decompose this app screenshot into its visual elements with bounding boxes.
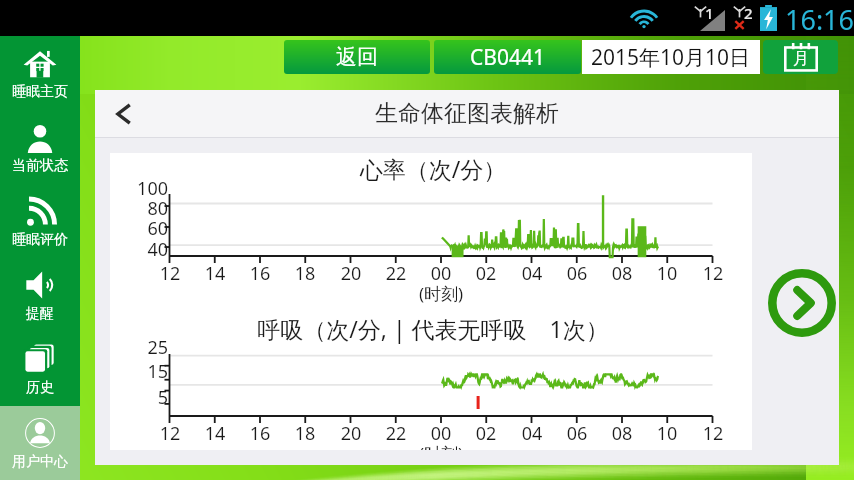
staticText: 睡眠主页	[12, 83, 68, 101]
button[interactable]: 当前状态	[0, 110, 80, 184]
staticText: 2	[744, 3, 753, 23]
staticText: 睡眠评价	[12, 231, 68, 249]
button[interactable]: 睡眠评价	[0, 184, 80, 258]
staticText: 14	[197, 421, 233, 446]
staticText: 5	[122, 385, 168, 410]
staticText: 2015年10月10日	[591, 43, 751, 72]
button[interactable]: Calendar	[763, 40, 838, 74]
staticText: 08	[604, 261, 640, 286]
staticText: 12	[695, 421, 731, 446]
staticText: 10	[649, 421, 685, 446]
staticText: 生命体征图表解析	[375, 99, 559, 128]
button[interactable]: 睡眠主页	[0, 36, 80, 110]
staticText: 月	[793, 49, 809, 69]
button[interactable]: 提醒	[0, 258, 80, 332]
staticText: 当前状态	[12, 157, 68, 175]
staticText: 60	[122, 216, 168, 241]
staticText: 06	[559, 261, 595, 286]
staticText: 心率（次/分）	[233, 153, 633, 184]
staticText: 25	[122, 335, 168, 360]
staticText: 12	[695, 261, 731, 286]
button[interactable]: 返回	[284, 40, 430, 74]
staticText: 12	[152, 261, 188, 286]
staticText: 10	[649, 261, 685, 286]
staticText: 06	[559, 421, 595, 446]
staticText: 20	[333, 261, 369, 286]
button[interactable]: Back	[95, 90, 153, 137]
staticText: 提醒	[26, 305, 54, 323]
button[interactable]: 2015年10月10日	[582, 40, 760, 74]
staticText: 18	[287, 261, 323, 286]
staticText: 20	[333, 421, 369, 446]
staticText: 15	[122, 359, 168, 384]
button[interactable]: 历史	[0, 332, 80, 406]
staticText: 历史	[26, 379, 54, 397]
button[interactable]: 用户中心	[0, 406, 80, 480]
staticText: 22	[378, 421, 414, 446]
staticText: 16	[242, 261, 278, 286]
staticText: 80	[122, 196, 168, 221]
button[interactable]: Next page	[768, 269, 836, 337]
staticText: 04	[514, 421, 550, 446]
staticText: 02	[468, 261, 504, 286]
staticText: 用户中心	[12, 453, 68, 471]
staticText: 16	[242, 421, 278, 446]
staticText: 40	[122, 237, 168, 262]
staticText: 00	[423, 421, 459, 446]
staticText: 02	[468, 421, 504, 446]
staticText: 呼吸（次/分, | 代表无呼吸 1次）	[233, 313, 633, 344]
staticText: 00	[423, 261, 459, 286]
staticText: (时刻)	[411, 282, 471, 305]
staticText: 返回	[336, 44, 378, 70]
staticText: 1	[705, 3, 714, 23]
staticText: (时刻)	[411, 442, 471, 450]
staticText: 18	[287, 421, 323, 446]
staticText: 14	[197, 261, 233, 286]
staticText: 04	[514, 261, 550, 286]
staticText: 22	[378, 261, 414, 286]
staticText: 12	[152, 421, 188, 446]
staticText: 16:16	[785, 1, 854, 37]
button[interactable]: CB0441	[434, 40, 581, 74]
staticText: 08	[604, 421, 640, 446]
staticText: CB0441	[470, 43, 545, 72]
staticText: 100	[122, 176, 168, 201]
